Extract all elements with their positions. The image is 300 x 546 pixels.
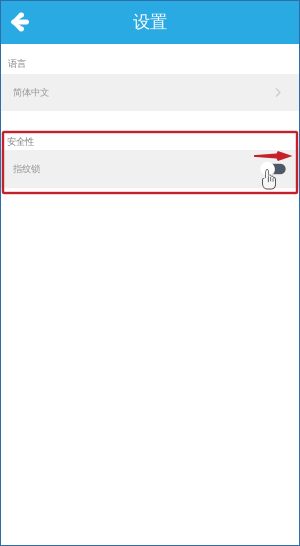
button[interactable]: Back — [0, 0, 46, 44]
staticText: 设置 — [133, 11, 167, 33]
button[interactable]: 简体中文 — [0, 74, 300, 111]
staticText: 安全性 — [7, 136, 34, 147]
button[interactable]: 指纹锁 — [0, 150, 300, 188]
staticText: 指纹锁 — [13, 163, 40, 175]
staticText: 语言 — [8, 58, 26, 69]
staticText: 简体中文 — [13, 87, 49, 98]
